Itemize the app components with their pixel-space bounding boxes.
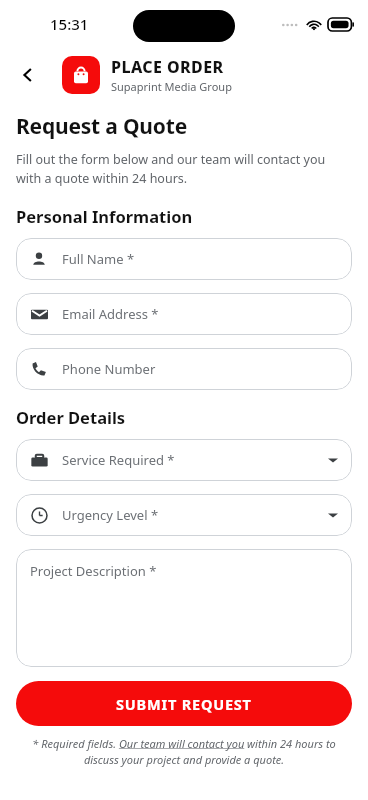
staticText: Phone Number <box>62 360 156 378</box>
staticText: Supaprint Media Group <box>111 79 232 94</box>
staticText: Service Required * <box>62 451 175 469</box>
button[interactable]: Urgency Level * <box>16 494 352 536</box>
staticText: SUBMIT REQUEST <box>116 694 252 714</box>
staticText: Order Details <box>16 406 126 428</box>
button[interactable]: Service Required * <box>16 439 352 481</box>
staticText: Fill out the form below and our team wil… <box>16 151 352 187</box>
staticText: Full Name * <box>62 250 135 268</box>
staticText: Personal Information <box>16 205 193 227</box>
button[interactable]: Project Description * <box>16 549 352 667</box>
staticText: * Required fields. Our team will contact… <box>16 736 352 767</box>
staticText: Request a Quote <box>16 112 187 141</box>
staticText: Email Address * <box>62 305 159 323</box>
button[interactable]: Phone Number <box>16 348 352 390</box>
button[interactable]: Back <box>8 55 48 95</box>
staticText: 15:31 <box>50 14 89 34</box>
button[interactable]: Full Name * <box>16 238 352 280</box>
button[interactable]: Email Address * <box>16 293 352 335</box>
staticText: Project Description * <box>30 562 157 580</box>
staticText: PLACE ORDER <box>111 56 224 78</box>
staticText: Urgency Level * <box>62 506 159 524</box>
button[interactable]: SUBMIT REQUEST <box>16 681 352 726</box>
